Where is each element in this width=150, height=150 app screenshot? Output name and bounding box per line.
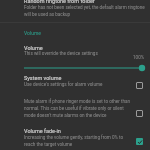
button[interactable] [0,124,150,148]
staticText: 100% [133,55,150,60]
staticText: Folder has not been selected yet, the de… [24,5,146,18]
staticText: Increasing the volume gently, starting f… [24,135,134,148]
staticText: Volume fade-in [24,128,146,134]
staticText: This will override the device settings [24,51,146,56]
staticText: Mute alarm if phone ringer mode is set t… [24,99,134,119]
button[interactable]: Mute alarm toggle [132,106,147,121]
staticText: Use device's settings for alarm volume [24,82,146,87]
staticText: Random ringtone from folder [24,0,146,4]
button[interactable]: System volume toggle [132,78,147,93]
button[interactable]: Volume fade-in toggle [132,134,147,149]
button[interactable] [0,94,150,120]
staticText: System volume [24,75,146,81]
button[interactable] [0,0,150,20]
button[interactable] [0,72,150,90]
staticText: Volume [24,45,146,51]
button[interactable] [0,42,150,70]
staticText: Volume [24,30,84,36]
